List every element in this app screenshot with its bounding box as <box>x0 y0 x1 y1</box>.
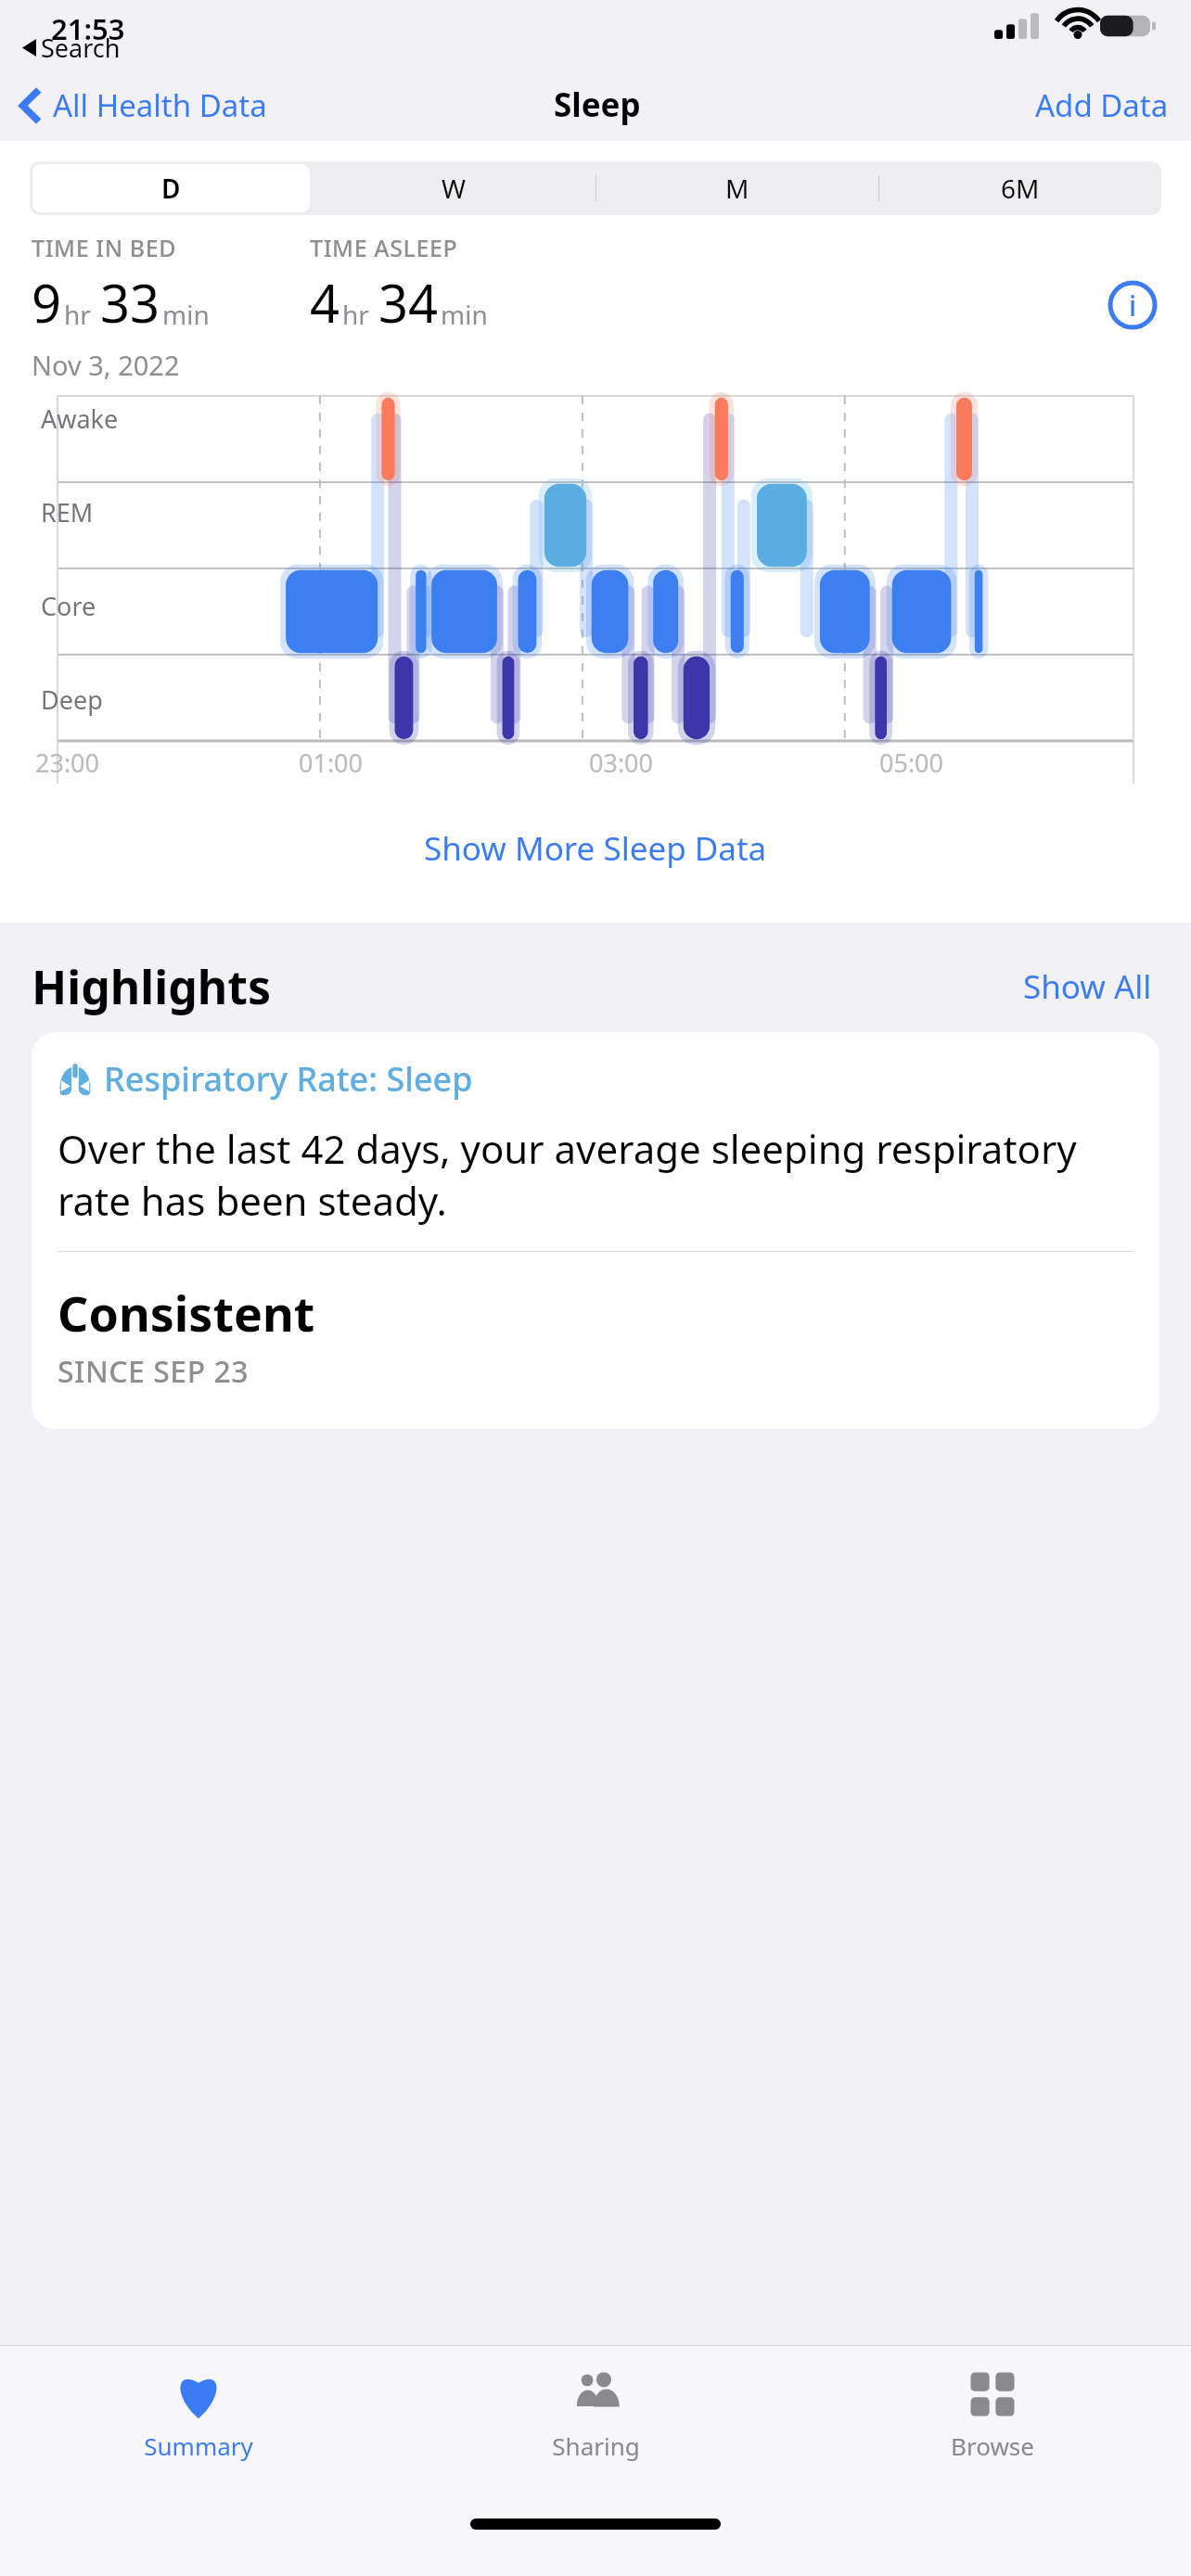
staticText: Nov 3, 2022 <box>32 347 180 383</box>
staticText: D <box>161 171 181 206</box>
button[interactable]: Respiratory Rate: Sleep <box>32 1032 1159 1429</box>
button[interactable]: W <box>313 161 595 215</box>
button[interactable]: Add Data <box>1013 75 1191 135</box>
button[interactable]: 6M <box>878 161 1161 215</box>
staticText: SINCE SEP 23 <box>58 1351 250 1392</box>
staticText: TIME ASLEEP <box>310 232 458 263</box>
button[interactable]: Browse <box>794 2346 1191 2494</box>
staticText: 01:00 <box>299 746 364 780</box>
button[interactable]: Info <box>1106 278 1159 332</box>
staticText: Browse <box>951 2429 1034 2462</box>
staticText: hr <box>342 297 369 332</box>
button[interactable]: Show More Sleep Data <box>0 817 1191 880</box>
staticText: Deep <box>41 682 103 717</box>
staticText: Consistent <box>58 1280 315 1345</box>
staticText: 03:00 <box>589 746 654 780</box>
staticText: All Health Data <box>53 84 267 126</box>
staticText: Sleep <box>554 83 641 127</box>
staticText: min <box>441 297 488 332</box>
staticText: Respiratory Rate: Sleep <box>104 1056 473 1102</box>
button[interactable]: Back <box>0 77 276 134</box>
staticText: Show More Sleep Data <box>424 826 767 871</box>
staticText: 4 <box>310 267 340 338</box>
button[interactable]: Show All <box>1016 957 1159 1016</box>
staticText: M <box>725 171 749 206</box>
staticText: W <box>442 171 467 206</box>
button[interactable]: Sharing <box>397 2346 794 2494</box>
staticText: Highlights <box>32 955 1016 1018</box>
staticText: min <box>162 297 210 332</box>
staticText: TIME IN BED <box>32 232 177 263</box>
button[interactable]: D <box>30 161 313 215</box>
staticText: Sharing <box>552 2429 640 2462</box>
staticText: hr <box>64 297 91 332</box>
staticText: Core <box>41 589 96 623</box>
staticText: Search <box>41 31 121 65</box>
staticText: 34 <box>378 267 439 338</box>
button[interactable]: Search <box>22 31 121 65</box>
staticText: REM <box>41 495 94 529</box>
button[interactable]: M <box>595 161 878 215</box>
staticText: 9 <box>32 267 62 338</box>
staticText: i <box>1129 287 1137 325</box>
staticText: 05:00 <box>879 746 944 780</box>
button[interactable]: Summary <box>0 2346 397 2494</box>
staticText: 21:53 <box>51 9 125 48</box>
staticText: Over the last 42 days, your average slee… <box>58 1122 1133 1227</box>
staticText: 6M <box>1001 171 1040 206</box>
other: Back <box>20 87 43 124</box>
staticText: Awake <box>41 402 119 436</box>
staticText: 23:00 <box>35 746 100 780</box>
staticText: Summary <box>144 2429 253 2462</box>
staticText: 33 <box>100 267 160 338</box>
